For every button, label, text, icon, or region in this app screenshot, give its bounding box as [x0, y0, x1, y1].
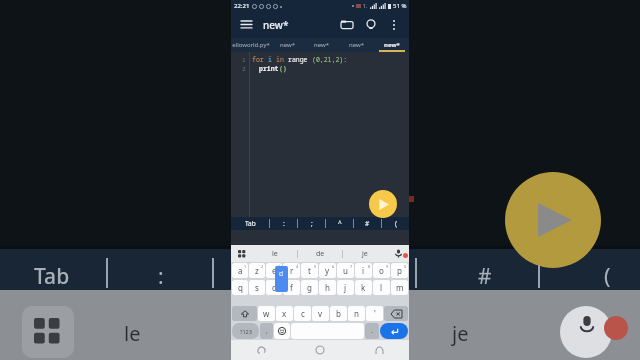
- staticText: 1: [242, 56, 246, 64]
- button[interactable]: Emoji: [274, 323, 290, 339]
- button[interactable]: f: [283, 280, 300, 295]
- staticText: Tab: [245, 219, 256, 228]
- button[interactable]: de: [298, 245, 342, 262]
- staticText: in: [276, 55, 288, 64]
- button[interactable]: c: [294, 306, 311, 321]
- button[interactable]: n: [348, 306, 365, 321]
- button[interactable]: i: [355, 263, 372, 278]
- button[interactable]: x: [276, 306, 293, 321]
- button[interactable]: j: [337, 280, 354, 295]
- button[interactable]: a: [232, 263, 248, 278]
- staticText: #: [365, 219, 370, 228]
- button[interactable]: Enter: [380, 323, 408, 339]
- staticText: de: [316, 249, 325, 259]
- button[interactable]: Backspace: [384, 306, 408, 321]
- staticText: new*: [384, 41, 400, 49]
- button[interactable]: e: [266, 263, 282, 278]
- staticText: 2: [242, 65, 246, 73]
- button[interactable]: o: [373, 263, 390, 278]
- staticText: z: [255, 265, 259, 276]
- staticText: 1: [244, 264, 247, 269]
- staticText: t: [308, 265, 311, 276]
- button[interactable]: h: [319, 280, 336, 295]
- staticText: :: [283, 219, 285, 228]
- button[interactable]: t: [301, 263, 318, 278]
- button[interactable]: q: [232, 280, 248, 295]
- button[interactable]: je: [343, 245, 387, 262]
- staticText: i: [362, 265, 365, 276]
- staticText: k: [361, 282, 366, 293]
- staticText: ;: [311, 219, 313, 228]
- button[interactable]: Home: [310, 340, 330, 360]
- staticText: 9: [386, 264, 389, 269]
- staticText: 5: [314, 264, 317, 269]
- staticText: w: [263, 308, 270, 319]
- staticText: :: [158, 262, 164, 291]
- staticText: a: [238, 265, 243, 276]
- button[interactable]: y: [319, 263, 336, 278]
- button[interactable]: Run: [369, 190, 397, 218]
- staticText: print: [259, 64, 279, 73]
- staticText: 4: [296, 264, 299, 269]
- button[interactable]: #: [354, 217, 381, 230]
- staticText: (0,21,2):: [312, 55, 348, 64]
- button[interactable]: elloworld.py*: [231, 38, 270, 52]
- button[interactable]: k: [355, 280, 372, 295]
- staticText: #: [478, 262, 492, 291]
- button[interactable]: .: [365, 323, 379, 339]
- staticText: 6: [332, 264, 335, 269]
- staticText: 22:21: [234, 2, 250, 10]
- button[interactable]: :: [270, 217, 297, 230]
- button[interactable]: w: [258, 306, 275, 321]
- button[interactable]: Voice input: [387, 245, 409, 262]
- staticText: 7: [350, 264, 353, 269]
- button[interactable]: new*: [270, 38, 304, 52]
- staticText: r: [290, 265, 294, 276]
- button[interactable]: Shift: [232, 306, 257, 321]
- button[interactable]: ,: [260, 323, 273, 339]
- staticText: n: [354, 308, 359, 319]
- button[interactable]: d: [266, 280, 282, 295]
- staticText: d: [279, 269, 284, 279]
- staticText: s: [255, 282, 259, 293]
- staticText: e: [272, 265, 277, 276]
- button[interactable]: Back: [251, 340, 271, 360]
- button[interactable]: le: [253, 245, 297, 262]
- button[interactable]: l: [373, 280, 390, 295]
- staticText: 1.: [363, 3, 368, 10]
- button[interactable]: r: [283, 263, 300, 278]
- staticText: b: [336, 308, 341, 319]
- staticText: m: [396, 282, 404, 293]
- button[interactable]: ?123: [232, 323, 259, 339]
- button[interactable]: g: [301, 280, 318, 295]
- staticText: ?123: [240, 328, 252, 335]
- button[interactable]: u: [337, 263, 354, 278]
- button[interactable]: new*: [374, 38, 409, 52]
- staticText: 3: [278, 264, 281, 269]
- button[interactable]: (: [382, 217, 409, 230]
- button[interactable]: new*: [304, 38, 339, 52]
- staticText: le: [124, 320, 141, 347]
- button[interactable]: Menu: [237, 16, 255, 34]
- button[interactable]: new*: [339, 38, 374, 52]
- button[interactable]: ;: [298, 217, 325, 230]
- button[interactable]: v: [312, 306, 329, 321]
- button[interactable]: ^: [326, 217, 353, 230]
- button[interactable]: ': [366, 306, 383, 321]
- button[interactable]: b: [330, 306, 347, 321]
- staticText: range: [288, 55, 312, 64]
- staticText: 0: [404, 264, 407, 269]
- button[interactable]: Hints: [361, 15, 381, 35]
- button[interactable]: Open folder: [337, 15, 357, 35]
- staticText: 51 %: [393, 2, 407, 10]
- button[interactable]: p: [391, 263, 408, 278]
- button[interactable]: Keyboard options: [231, 245, 253, 262]
- button[interactable]: s: [249, 280, 265, 295]
- button[interactable]: Tab: [231, 217, 269, 230]
- button[interactable]: Recents: [369, 340, 389, 360]
- button[interactable]: More options: [385, 16, 403, 34]
- staticText: ^: [338, 219, 342, 228]
- button[interactable]: z: [249, 263, 265, 278]
- button[interactable]: m: [391, 280, 408, 295]
